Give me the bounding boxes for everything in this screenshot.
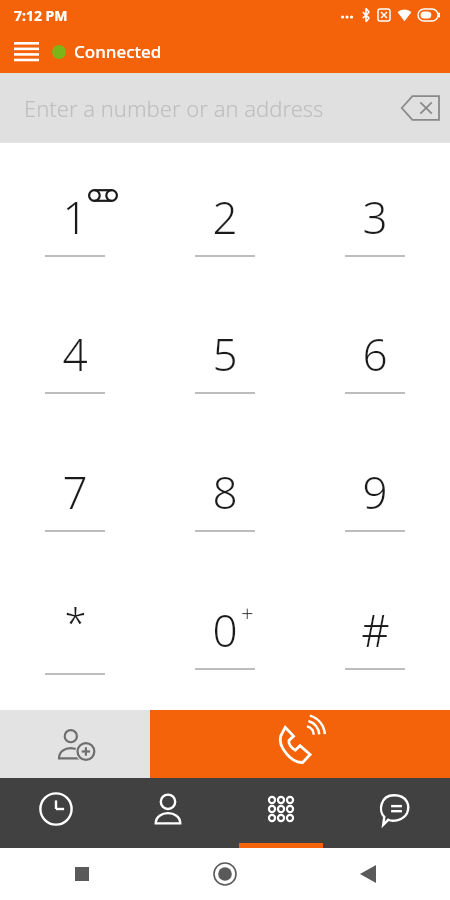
staticText: 1 <box>62 187 88 247</box>
button[interactable]: Enter a number or an address <box>0 73 450 143</box>
button[interactable]: Add contact <box>0 710 150 778</box>
staticText: 8 <box>212 462 238 522</box>
staticText: 6 <box>362 324 388 384</box>
button[interactable]: Open navigation menu <box>0 30 52 73</box>
button[interactable]: 1 <box>0 153 150 290</box>
staticText: 7:12 PM <box>14 6 68 25</box>
button[interactable]: Messages <box>337 778 450 848</box>
button[interactable]: * <box>0 566 150 704</box>
button[interactable]: 4 <box>0 290 150 428</box>
button[interactable]: # <box>300 566 450 704</box>
staticText: 2 <box>212 187 238 247</box>
button[interactable]: Recents <box>60 852 104 896</box>
button[interactable]: Call <box>150 710 450 778</box>
button[interactable]: 8 <box>150 428 300 566</box>
button[interactable]: 2 <box>150 153 300 290</box>
button[interactable]: Contacts <box>112 778 224 848</box>
button[interactable]: 5 <box>150 290 300 428</box>
button[interactable]: 0 <box>150 566 300 704</box>
staticText: 4 <box>62 324 88 384</box>
button[interactable]: Recent calls <box>0 778 112 848</box>
staticText: # <box>361 600 390 660</box>
staticText: * <box>64 595 87 649</box>
staticText: 7 <box>62 462 88 522</box>
button[interactable]: 9 <box>300 428 450 566</box>
staticText: Connected <box>74 40 162 63</box>
staticText: 3 <box>362 187 388 247</box>
button[interactable]: Dialpad <box>224 778 337 848</box>
button[interactable]: 6 <box>300 290 450 428</box>
button[interactable]: Backspace <box>390 73 450 143</box>
staticText: 9 <box>362 462 388 522</box>
button[interactable]: 3 <box>300 153 450 290</box>
button[interactable]: 7 <box>0 428 150 566</box>
button[interactable]: Home <box>203 852 247 896</box>
button[interactable]: Back <box>346 852 390 896</box>
staticText: 5 <box>212 324 238 384</box>
staticText: 0 <box>212 600 238 660</box>
staticText: Enter a number or an address <box>24 93 390 123</box>
staticText: + <box>241 598 254 628</box>
